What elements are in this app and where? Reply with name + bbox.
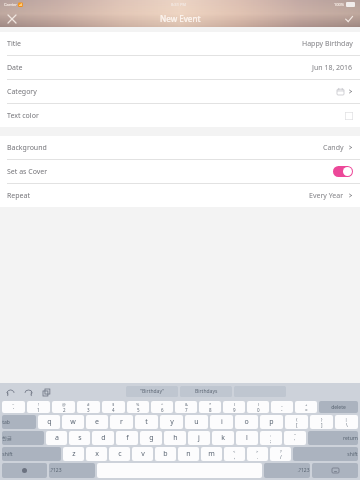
button[interactable]: x (86, 447, 107, 461)
staticText: # (87, 402, 90, 407)
button[interactable]: Text color (0, 104, 360, 127)
button[interactable]: e (86, 415, 108, 429)
button[interactable]: $ (102, 401, 125, 413)
button[interactable]: l (236, 431, 258, 445)
button[interactable]: Redo (21, 385, 35, 399)
button[interactable]: ! (27, 401, 50, 413)
button[interactable]: m (201, 447, 222, 461)
button[interactable]: Category (0, 80, 360, 104)
button[interactable]: shift (2, 447, 61, 461)
button[interactable]: @ (52, 401, 75, 413)
button[interactable]: Title (0, 32, 360, 56)
button[interactable]: Cancel (5, 12, 18, 25)
staticText: New Event (160, 13, 201, 24)
staticText: f (126, 433, 129, 443)
button[interactable]: } (310, 415, 333, 429)
button[interactable]: < (224, 447, 245, 461)
staticText: return (343, 435, 358, 442)
staticText: * (209, 402, 212, 407)
button[interactable]: d (92, 431, 114, 445)
staticText: Happy Birthday (302, 39, 353, 49)
staticText: Carrier 📶 (4, 2, 24, 7)
button[interactable]: Date (0, 56, 360, 80)
button[interactable]: Background (0, 136, 360, 160)
button[interactable]: u (185, 415, 208, 429)
button[interactable]: ^ (151, 401, 173, 413)
button[interactable]: + (295, 401, 317, 413)
button[interactable]: .?123 (264, 463, 310, 478)
button[interactable]: g (140, 431, 162, 445)
staticText: / (280, 454, 282, 460)
button[interactable]: i (210, 415, 233, 429)
staticText: u (194, 417, 199, 427)
button[interactable]: o (235, 415, 258, 429)
button[interactable]: n (178, 447, 199, 461)
button[interactable]: h (164, 431, 186, 445)
button[interactable]: tab (2, 415, 36, 429)
staticText: , (234, 454, 236, 460)
button[interactable]: shift (293, 447, 358, 461)
button[interactable]: v (132, 447, 153, 461)
button[interactable]: y (160, 415, 183, 429)
button[interactable]: | (335, 415, 358, 429)
staticText: shift (2, 451, 13, 458)
button[interactable]: # (77, 401, 100, 413)
button[interactable]: j (188, 431, 210, 445)
button[interactable]: : (260, 431, 282, 445)
button[interactable]: ? (270, 447, 291, 461)
button[interactable]: ~ (2, 401, 25, 413)
button[interactable]: k (212, 431, 234, 445)
staticText: 9 (233, 407, 236, 413)
button[interactable]: Done (342, 12, 355, 25)
button[interactable]: c (109, 447, 130, 461)
button[interactable]: t (135, 415, 158, 429)
button[interactable]: 한글 (2, 431, 44, 445)
button[interactable]: delete (319, 401, 358, 413)
button[interactable] (2, 463, 47, 478)
button[interactable]: * (199, 401, 221, 413)
staticText: ` (13, 407, 15, 413)
button[interactable]: & (175, 401, 197, 413)
button[interactable]: _ (271, 401, 293, 413)
button[interactable]: " (284, 431, 306, 445)
staticText: .?123 (297, 467, 310, 474)
staticText: k (221, 433, 225, 443)
button[interactable] (312, 463, 358, 478)
button[interactable]: q (38, 415, 60, 429)
button[interactable]: % (127, 401, 149, 413)
staticText: + (305, 402, 308, 407)
button[interactable]: Set as Cover (0, 160, 360, 184)
button[interactable]: p (260, 415, 283, 429)
button[interactable] (333, 166, 353, 177)
button[interactable]: Undo (3, 385, 17, 399)
staticText: g (149, 433, 154, 443)
button[interactable]: > (247, 447, 268, 461)
button[interactable]: .?123 (49, 463, 95, 478)
staticText: - (281, 407, 283, 413)
button[interactable]: z (63, 447, 84, 461)
button[interactable]: a (46, 431, 67, 445)
staticText: Set as Cover (7, 167, 48, 177)
button[interactable]: { (285, 415, 308, 429)
button[interactable]: s (69, 431, 90, 445)
button[interactable]: ( (223, 401, 245, 413)
button[interactable]: Repeat (0, 184, 360, 207)
staticText: Repeat (7, 191, 31, 201)
button[interactable]: return (308, 431, 358, 445)
staticText: : (270, 433, 272, 438)
button[interactable]: f (116, 431, 138, 445)
staticText: a (55, 433, 59, 443)
button[interactable]: r (110, 415, 133, 429)
staticText: & (185, 402, 188, 407)
button[interactable]: ) (247, 401, 269, 413)
staticText: % (136, 402, 140, 407)
staticText: 한글 (2, 435, 12, 441)
button[interactable]: Birthdays (180, 386, 232, 397)
button[interactable]: "Birthday" (126, 386, 178, 397)
staticText: l (246, 433, 248, 443)
button[interactable]: w (62, 415, 84, 429)
button[interactable]: Paste (39, 385, 53, 399)
button[interactable]: b (155, 447, 176, 461)
